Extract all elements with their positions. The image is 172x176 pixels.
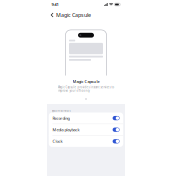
staticText: 9:41	[51, 2, 58, 7]
button[interactable]: Media playback	[49, 124, 123, 135]
staticText: Recording	[52, 115, 69, 121]
staticText: Magic Capsule	[56, 11, 91, 19]
staticText: Media playback	[52, 127, 79, 132]
staticText: Clock	[52, 139, 62, 144]
staticText: Magic Capsule	[72, 79, 99, 84]
button[interactable]: Recording	[49, 112, 123, 124]
button[interactable]: Back	[51, 12, 54, 18]
button[interactable]: Clock	[49, 136, 123, 147]
staticText: System services	[52, 109, 71, 112]
staticText: Magic Capsule provides instant services …	[57, 85, 114, 92]
